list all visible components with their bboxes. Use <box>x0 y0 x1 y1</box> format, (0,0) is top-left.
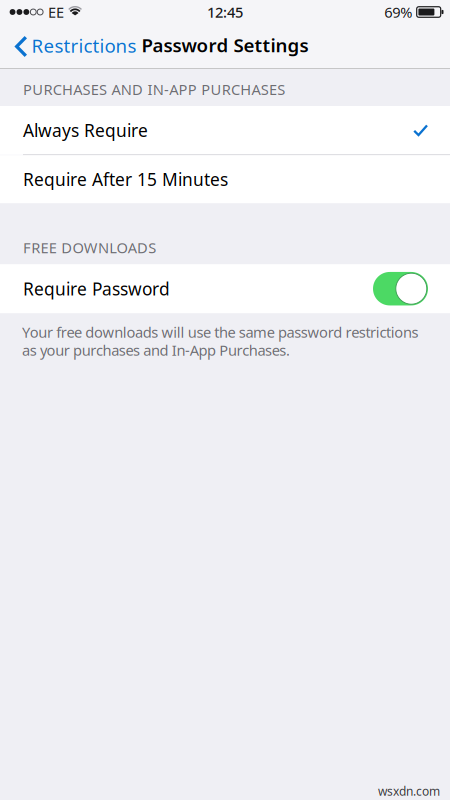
staticText: wsxdn.com <box>378 783 440 799</box>
staticText: Password Settings <box>141 33 308 57</box>
staticText: 12:45 <box>207 2 243 22</box>
button[interactable]: Require After 15 Minutes <box>0 155 450 203</box>
staticText: Require Password <box>23 277 170 300</box>
staticText: 69% <box>384 2 412 22</box>
staticText: FREE DOWNLOADS <box>23 238 156 257</box>
staticText: PURCHASES AND IN-APP PURCHASES <box>23 79 285 99</box>
staticText: as your purchases and In-App Purchases. <box>22 340 290 360</box>
staticText: Restrictions <box>31 33 136 58</box>
staticText: EE <box>48 2 64 22</box>
staticText: Your free downloads will use the same pa… <box>22 322 418 342</box>
staticText: Require After 15 Minutes <box>23 168 228 191</box>
staticText: Always Require <box>23 119 148 142</box>
button[interactable]: Always Require <box>0 106 450 154</box>
button[interactable]: Restrictions <box>0 24 144 69</box>
button[interactable]: Require Password <box>0 264 450 313</box>
